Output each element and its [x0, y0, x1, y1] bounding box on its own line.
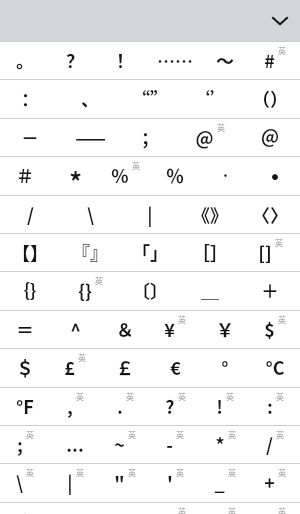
button[interactable]: ￡: [100, 348, 150, 386]
button[interactable]: ＄: [0, 348, 50, 386]
button[interactable]: ,: [50, 387, 100, 425]
button[interactable]: ＋: [240, 271, 300, 309]
button[interactable]: ｛｝: [0, 271, 60, 309]
button[interactable]: ~: [100, 425, 150, 463]
button[interactable]: +: [250, 463, 300, 501]
button[interactable]: ＠: [240, 118, 300, 156]
button[interactable]: @: [180, 118, 240, 156]
button[interactable]: ；: [120, 118, 180, 156]
button[interactable]: £: [50, 348, 100, 386]
button[interactable]: 、: [60, 79, 120, 117]
button[interactable]: ±: [0, 502, 50, 514]
staticText: 英: [217, 122, 225, 134]
button[interactable]: *: [50, 156, 100, 194]
button[interactable]: ￥: [200, 310, 250, 348]
button[interactable]: !: [200, 387, 250, 425]
button[interactable]: °: [200, 348, 250, 386]
button[interactable]: ！: [100, 41, 150, 79]
staticText: 英: [26, 429, 34, 441]
staticText: ...: [66, 431, 84, 457]
button[interactable]: ＆: [100, 310, 150, 348]
button[interactable]: ": [100, 463, 150, 501]
button[interactable]: #: [250, 41, 300, 79]
button[interactable]: <: [150, 502, 200, 514]
button[interactable]: 「」: [120, 233, 180, 271]
button[interactable]: ×: [50, 502, 100, 514]
button[interactable]: Collapse panel: [262, 3, 297, 38]
button[interactable]: |: [120, 195, 180, 233]
staticText: 英: [128, 467, 136, 479]
staticText: ‘’: [192, 85, 228, 111]
button[interactable]: {}: [60, 271, 120, 309]
button[interactable]: /: [250, 425, 300, 463]
button[interactable]: €: [150, 348, 200, 386]
button[interactable]: ·: [200, 156, 250, 194]
button[interactable]: ...: [50, 425, 100, 463]
button[interactable]: =: [250, 502, 300, 514]
staticText: 『』: [72, 239, 108, 265]
button[interactable]: ［］: [180, 233, 240, 271]
button[interactable]: 。: [0, 41, 50, 79]
button[interactable]: ‘’: [180, 79, 240, 117]
button[interactable]: ＝: [0, 310, 50, 348]
staticText: 「」: [132, 239, 168, 265]
staticText: ~: [114, 431, 125, 457]
button[interactable]: _: [200, 463, 250, 501]
button[interactable]: °C: [250, 348, 300, 386]
button[interactable]: －: [0, 118, 60, 156]
button[interactable]: ＿: [180, 271, 240, 309]
button[interactable]: 『』: [60, 233, 120, 271]
button[interactable]: ——: [60, 118, 120, 156]
button[interactable]: ？: [50, 41, 100, 79]
button[interactable]: ÷: [100, 502, 150, 514]
staticText: ＝: [16, 316, 34, 342]
button[interactable]: “”: [120, 79, 180, 117]
button[interactable]: ％: [150, 156, 200, 194]
button[interactable]: :: [250, 387, 300, 425]
button[interactable]: ^: [50, 310, 100, 348]
button[interactable]: >: [200, 502, 250, 514]
button[interactable]: $: [250, 310, 300, 348]
button[interactable]: ……: [150, 41, 200, 79]
button[interactable]: ': [150, 463, 200, 501]
staticText: 、: [81, 85, 99, 111]
button[interactable]: -: [150, 425, 200, 463]
button[interactable]: *: [200, 425, 250, 463]
staticText: .: [117, 393, 123, 419]
button[interactable]: 《》: [180, 195, 240, 233]
button[interactable]: °F: [0, 387, 50, 425]
button[interactable]: /: [0, 195, 60, 233]
staticText: 英: [178, 506, 186, 514]
button[interactable]: %: [100, 156, 150, 194]
staticText: 〔〕: [132, 277, 168, 303]
button[interactable]: ;: [0, 425, 50, 463]
staticText: 英: [278, 506, 286, 514]
button[interactable]: ：: [0, 79, 60, 117]
staticText: 英: [278, 314, 286, 326]
staticText: {}: [78, 277, 92, 303]
button[interactable]: ¥: [150, 310, 200, 348]
button[interactable]: 【】: [0, 233, 60, 271]
button[interactable]: \: [60, 195, 120, 233]
button[interactable]: ＃: [0, 156, 50, 194]
button[interactable]: |: [50, 463, 100, 501]
staticText: ｛｝: [12, 277, 48, 303]
button[interactable]: •: [250, 156, 300, 194]
staticText: 英: [176, 429, 184, 441]
button[interactable]: ～: [200, 41, 250, 79]
button[interactable]: []: [240, 233, 300, 271]
button[interactable]: ?: [150, 387, 200, 425]
staticText: _: [214, 469, 225, 495]
button[interactable]: .: [100, 387, 150, 425]
staticText: 英: [78, 352, 86, 364]
staticText: 英: [276, 429, 284, 441]
staticText: ；: [141, 124, 159, 150]
staticText: ￡: [116, 354, 134, 380]
button[interactable]: （）: [240, 79, 300, 117]
button[interactable]: 〈〉: [240, 195, 300, 233]
button[interactable]: \: [0, 463, 50, 501]
staticText: °C: [265, 354, 285, 380]
button[interactable]: 〔〕: [120, 271, 180, 309]
staticText: ——: [75, 124, 106, 150]
